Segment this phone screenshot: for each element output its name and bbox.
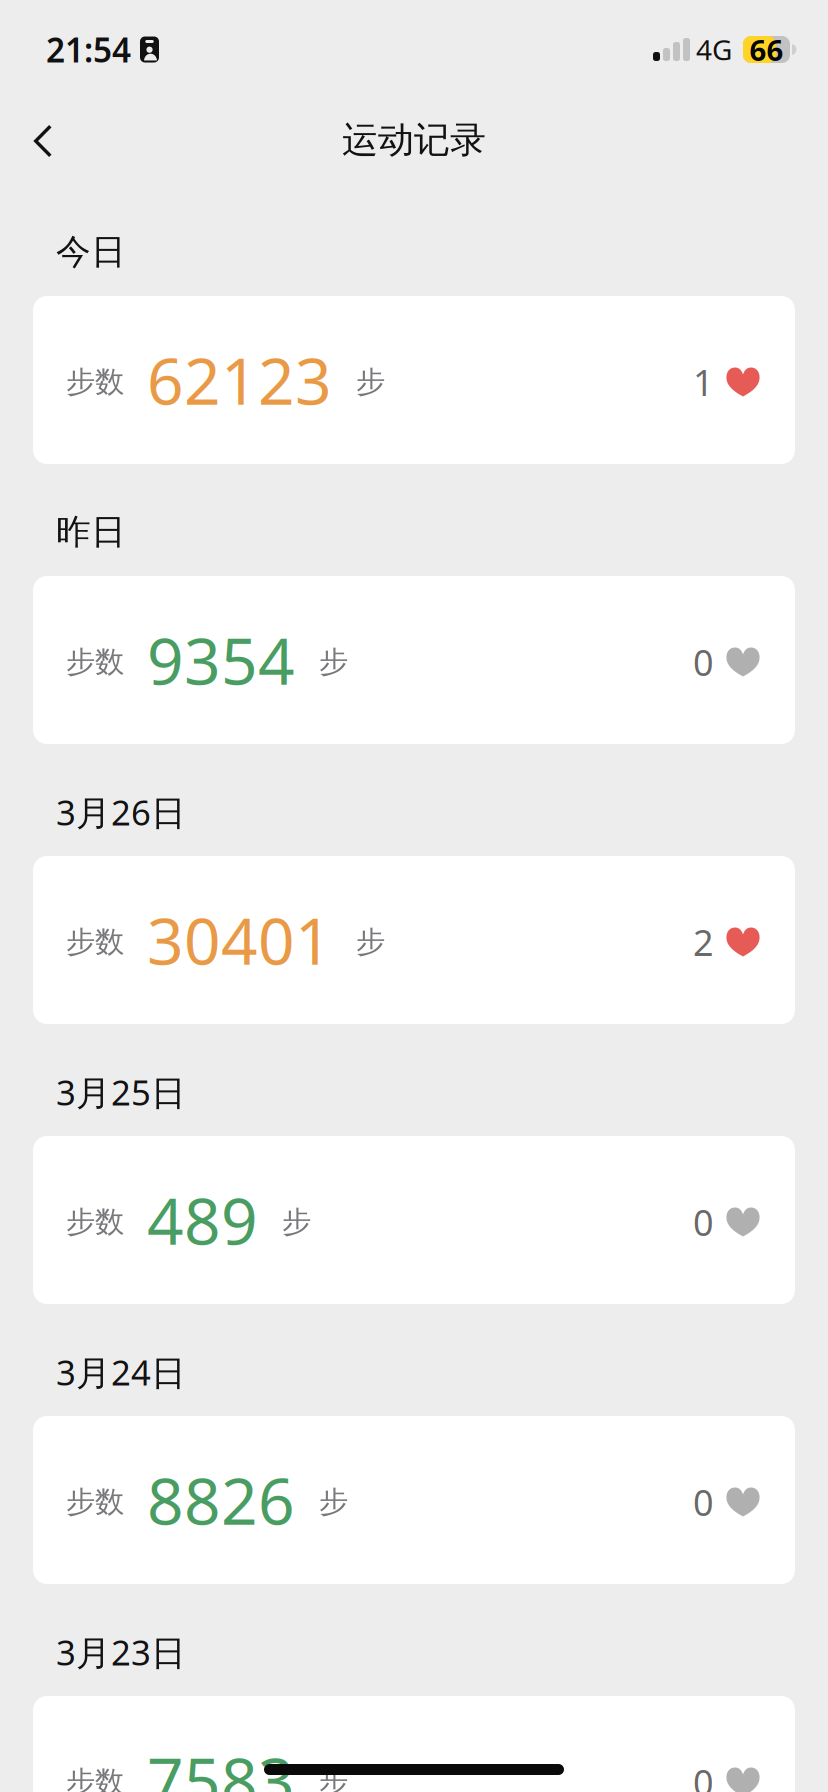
staticText: 62123 — [147, 337, 332, 422]
staticText: 0 — [693, 1198, 714, 1246]
button[interactable]: 步数 — [33, 1416, 795, 1584]
staticText: 3月24日 — [56, 1349, 186, 1395]
staticText: 运动记录 — [342, 118, 486, 162]
staticText: 步数 — [66, 1204, 124, 1240]
staticText: 2 — [693, 918, 714, 966]
staticText: 9354 — [147, 617, 295, 702]
button[interactable]: Back — [12, 107, 74, 171]
staticText: 步 — [319, 644, 348, 680]
staticText: 0 — [693, 1478, 714, 1526]
staticText: 30401 — [147, 897, 332, 982]
button[interactable]: 步数 — [33, 1696, 795, 1792]
staticText: 昨日 — [56, 511, 126, 553]
staticText: 3月23日 — [56, 1629, 186, 1675]
staticText: 3月26日 — [56, 789, 186, 835]
staticText: 步 — [319, 1484, 348, 1520]
staticText: 8826 — [147, 1457, 295, 1542]
button[interactable]: 步数 — [33, 576, 795, 744]
staticText: 步数 — [66, 364, 124, 400]
staticText: 21:54 — [46, 27, 131, 72]
staticText: 0 — [693, 1758, 714, 1792]
staticText: 7583 — [147, 1737, 295, 1792]
staticText: 步数 — [66, 644, 124, 680]
staticText: 步 — [356, 924, 385, 960]
staticText: 步数 — [66, 924, 124, 960]
staticText: 步 — [356, 364, 385, 400]
staticText: 步 — [319, 1764, 348, 1792]
staticText: 1 — [693, 358, 714, 406]
staticText: 步 — [282, 1204, 311, 1240]
staticText: 步数 — [66, 1484, 124, 1520]
button[interactable]: 步数 — [33, 856, 795, 1024]
staticText: 4G — [696, 31, 732, 68]
staticText: 66 — [749, 30, 783, 69]
staticText: 0 — [693, 638, 714, 686]
staticText: 今日 — [56, 231, 126, 273]
button[interactable]: 步数 — [33, 1136, 795, 1304]
staticText: 步数 — [66, 1764, 124, 1792]
button[interactable]: 步数 — [33, 296, 795, 464]
staticText: 489 — [147, 1177, 258, 1262]
staticText: 3月25日 — [56, 1069, 186, 1115]
